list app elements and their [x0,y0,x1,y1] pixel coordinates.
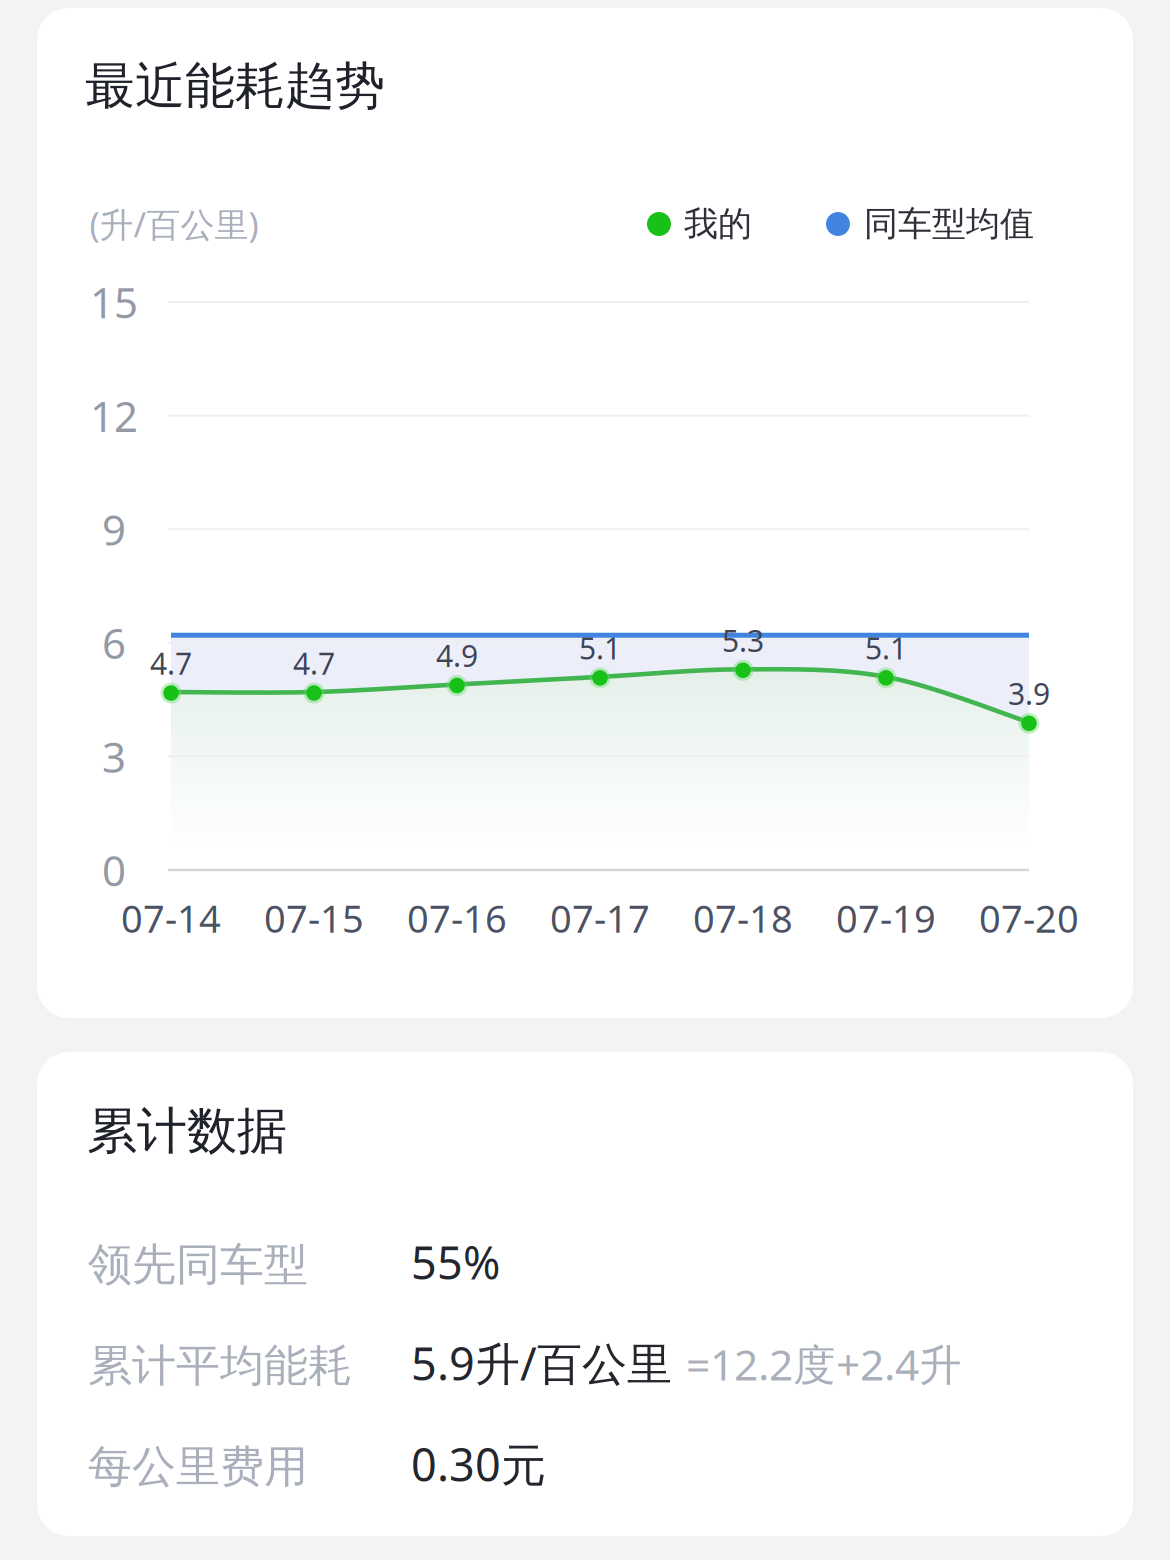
staticText: 12 [90,387,138,444]
staticText: 07-15 [264,892,364,944]
staticText: 同车型均值 [864,203,1034,245]
staticText: 5.1 [865,627,907,668]
staticText: 6 [102,614,126,671]
staticText: 07-17 [550,892,650,944]
staticText: 9 [102,501,126,558]
button[interactable]: 我的 [647,200,765,248]
staticText: 4.7 [293,643,335,683]
staticText: 07-18 [693,892,793,944]
staticText: (升/百公里) [89,201,258,247]
staticText: 07-20 [979,892,1079,944]
staticText: 5.3 [722,620,764,661]
staticText: 5.1 [579,627,621,668]
staticText: 每公里费用 [88,1439,308,1494]
staticText: 07-16 [407,892,507,944]
staticText: 3.9 [1008,673,1050,714]
staticText: 4.9 [436,635,478,676]
staticText: =12.2度+2.4升 [686,1335,962,1393]
staticText: 0 [102,841,126,899]
staticText: 4.7 [150,643,192,683]
staticText: 07-14 [121,892,221,944]
staticText: 55% [411,1231,500,1293]
staticText: 07-19 [836,892,936,944]
button[interactable]: 同车型均值 [826,200,1042,248]
staticText: 0.30元 [411,1433,546,1495]
staticText: 最近能耗趋势 [85,54,385,117]
staticText: 累计平均能耗 [88,1338,352,1393]
staticText: 3 [102,728,126,785]
staticText: 5.9升/百公里 [411,1332,672,1394]
staticText: 领先同车型 [88,1237,308,1292]
staticText: 累计数据 [87,1099,287,1162]
staticText: 15 [90,273,138,331]
staticText: 我的 [684,203,752,245]
